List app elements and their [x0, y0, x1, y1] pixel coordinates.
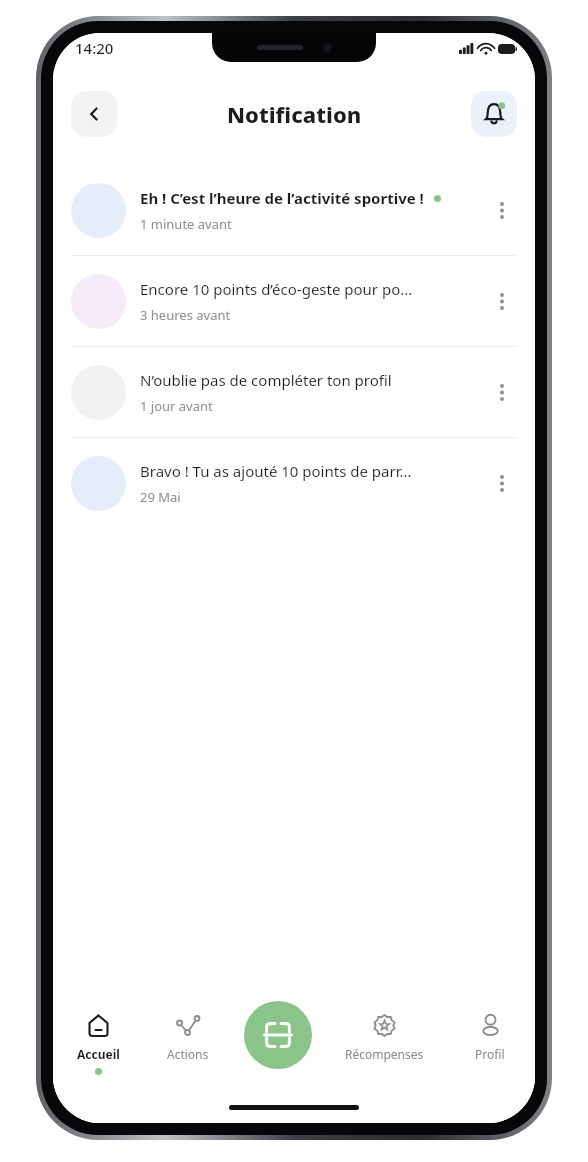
staticText: 29 Mai	[140, 488, 181, 506]
button[interactable]: Scan	[244, 1001, 312, 1069]
button[interactable]: More options	[487, 468, 517, 498]
button[interactable]: Encore 10 points d’éco-geste pour po...	[53, 256, 535, 346]
staticText: Notification	[227, 99, 362, 129]
button[interactable]: Notifications	[471, 91, 517, 137]
staticText: N’oublie pas de compléter ton profil	[140, 370, 392, 390]
staticText: 1 minute avant	[140, 215, 232, 233]
button[interactable]: More options	[487, 286, 517, 316]
button[interactable]: More options	[487, 195, 517, 225]
button[interactable]: Profil	[445, 997, 535, 1062]
button[interactable]: Récompenses	[323, 997, 445, 1062]
button[interactable]: Actions	[143, 997, 233, 1062]
button[interactable]: N’oublie pas de compléter ton profil	[53, 347, 535, 437]
button[interactable]: Back	[71, 91, 117, 137]
staticText: Bravo ! Tu as ajouté 10 points de parr..…	[140, 461, 412, 481]
staticText: Encore 10 points d’éco-geste pour po...	[140, 279, 413, 299]
staticText: 14:20	[75, 38, 114, 58]
staticText: Profil	[475, 1046, 505, 1062]
staticText: Eh ! C’est l’heure de l’activité sportiv…	[140, 188, 424, 208]
button[interactable]: Eh ! C’est l’heure de l’activité sportiv…	[53, 165, 535, 255]
button[interactable]: More options	[487, 377, 517, 407]
staticText: 3 heures avant	[140, 306, 231, 324]
staticText: Accueil	[77, 1046, 120, 1062]
staticText: Actions	[167, 1046, 209, 1062]
button[interactable]: Accueil	[53, 997, 143, 1075]
staticText: Récompenses	[345, 1046, 424, 1062]
button[interactable]: Bravo ! Tu as ajouté 10 points de parr..…	[53, 438, 535, 528]
staticText: 1 jour avant	[140, 397, 213, 415]
